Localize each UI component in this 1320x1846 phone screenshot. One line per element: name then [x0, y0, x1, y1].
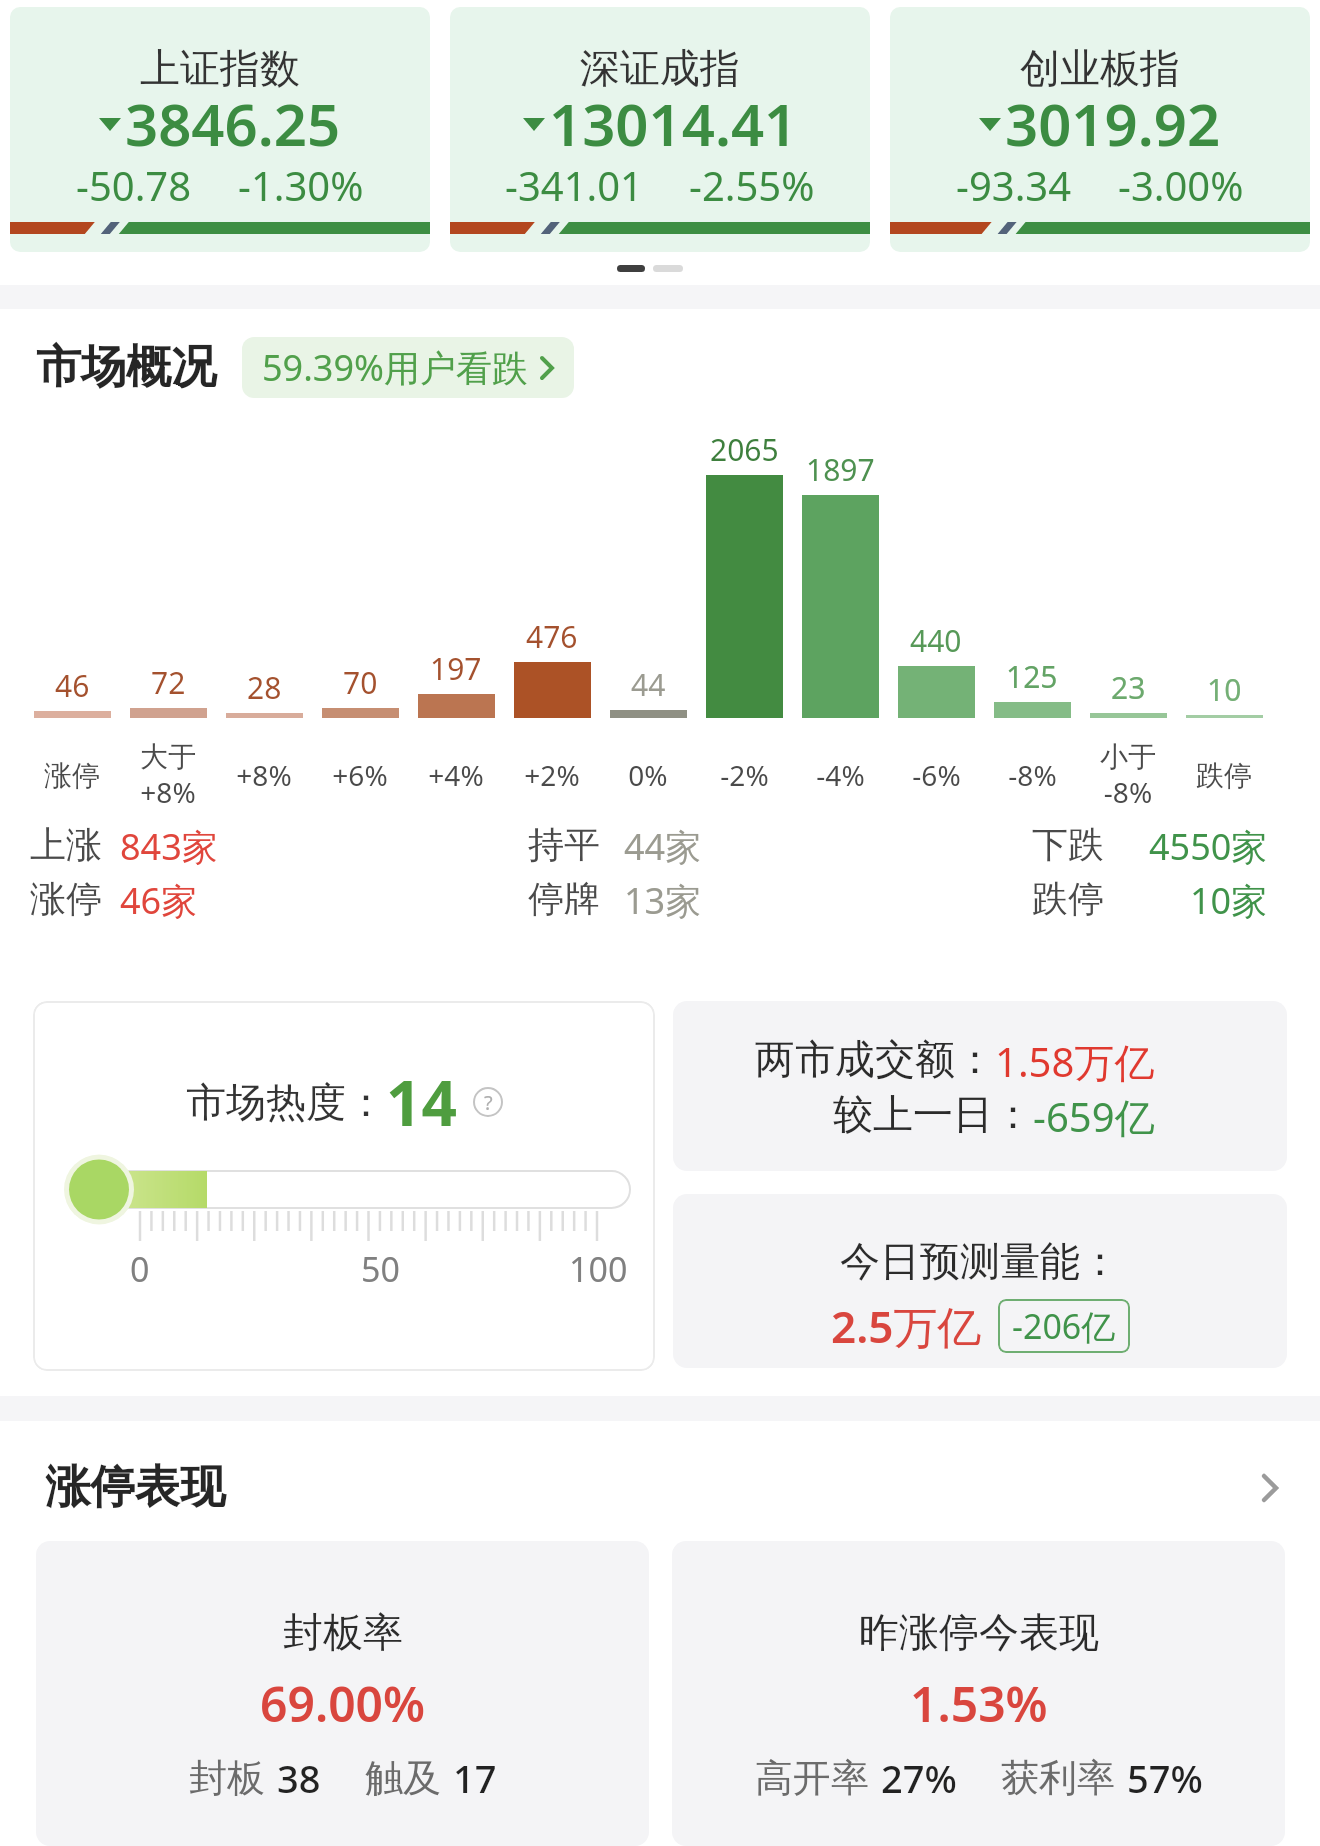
staticText: 100 [569, 1246, 628, 1292]
staticText: 44家 [624, 822, 702, 870]
staticText: -2% [720, 756, 769, 794]
staticText: 上涨 [30, 822, 102, 867]
staticText: 两市成交额： [755, 1034, 995, 1084]
staticText: -341.01 [505, 158, 643, 212]
staticText: 10 [1207, 669, 1242, 710]
staticText: 46家 [120, 876, 198, 924]
staticText: 持平 [528, 822, 600, 867]
button[interactable]: 上证指数 [10, 7, 430, 252]
staticText: 69.00% [260, 1671, 426, 1736]
staticText: ? [484, 1089, 493, 1116]
staticText: 59.39%用户看跌 [262, 343, 528, 392]
staticText: 市场概况 [36, 339, 216, 396]
staticText: 高开率 [755, 1754, 869, 1802]
staticText: 4550家 [1149, 822, 1268, 870]
staticText: +2% [524, 756, 580, 794]
staticText: 843家 [120, 822, 218, 870]
staticText: 57% [1127, 1752, 1203, 1804]
staticText: 44 [631, 664, 666, 705]
staticText: 14 [386, 1060, 457, 1144]
staticText: +4% [428, 756, 484, 794]
button[interactable]: 昨涨停今表现 [672, 1541, 1285, 1846]
staticText: 1.58万亿 [995, 1034, 1155, 1089]
staticText: 大于 +8% [140, 739, 196, 811]
staticText: 50 [361, 1246, 400, 1292]
staticText: 创业板指 [1020, 43, 1180, 93]
staticText: 1897 [806, 449, 875, 490]
staticText: +8% [236, 756, 292, 794]
staticText: 涨停 [30, 876, 102, 921]
staticText: 市场热度： [186, 1077, 386, 1127]
staticText: 较上一日： [833, 1089, 1033, 1139]
button[interactable]: 两市成交额： [673, 1001, 1287, 1171]
staticText: -93.34 [956, 158, 1072, 212]
button[interactable]: 封板率 [36, 1541, 649, 1846]
staticText: 小于 -8% [1100, 739, 1156, 811]
staticText: -6% [912, 756, 961, 794]
staticText: 13家 [624, 876, 702, 924]
staticText: -2.55% [689, 158, 815, 212]
staticText: 跌停 [1032, 876, 1104, 921]
staticText: 28 [247, 667, 282, 708]
staticText: 13014.41 [549, 84, 798, 163]
staticText: 70 [343, 662, 378, 703]
staticText: 1.53% [910, 1671, 1048, 1736]
staticText: 跌停 [1196, 758, 1252, 793]
staticText: 46 [55, 665, 90, 706]
button[interactable]: 深证成指 [450, 7, 870, 252]
staticText: 今日预测量能： [840, 1236, 1120, 1286]
staticText: 2065 [710, 429, 779, 470]
staticText: 上证指数 [140, 43, 300, 93]
staticText: 125 [1006, 656, 1058, 697]
staticText: -659亿 [1033, 1089, 1155, 1144]
staticText: 3019.92 [1005, 84, 1221, 163]
staticText: 下跌 [1032, 822, 1104, 867]
staticText: 涨停 [44, 758, 100, 793]
staticText: -3.00% [1118, 158, 1244, 212]
staticText: -8% [1008, 756, 1057, 794]
staticText: +6% [332, 756, 388, 794]
staticText: 2.5万亿 [831, 1296, 982, 1356]
staticText: -1.30% [238, 158, 364, 212]
staticText: 197 [430, 648, 482, 689]
staticText: 23 [1111, 667, 1146, 708]
staticText: 10家 [1190, 876, 1268, 924]
button[interactable]: 创业板指 [890, 7, 1310, 252]
staticText: 0% [628, 756, 668, 794]
button[interactable]: 59.39%用户看跌 [242, 337, 574, 398]
staticText: 3846.25 [125, 84, 341, 163]
staticText: -4% [816, 756, 865, 794]
staticText: 17 [453, 1752, 497, 1804]
button[interactable]: 今日预测量能： [673, 1194, 1287, 1368]
staticText: 获利率 [1001, 1754, 1115, 1802]
staticText: 72 [151, 662, 186, 703]
staticText: -206亿 [1012, 1303, 1116, 1349]
staticText: 38 [277, 1752, 321, 1804]
staticText: 0 [130, 1246, 150, 1292]
button[interactable]: 市场热度： [33, 1001, 655, 1371]
staticText: 476 [526, 616, 578, 657]
staticText: 涨停表现 [45, 1459, 225, 1516]
staticText: 昨涨停今表现 [859, 1607, 1099, 1657]
staticText: 深证成指 [580, 43, 740, 93]
staticText: 触及 [365, 1754, 441, 1802]
staticText: 封板 [189, 1754, 265, 1802]
staticText: 27% [881, 1752, 957, 1804]
staticText: 440 [910, 620, 962, 661]
staticText: -50.78 [76, 158, 192, 212]
staticText: 停牌 [528, 876, 600, 921]
staticText: 封板率 [283, 1607, 403, 1657]
